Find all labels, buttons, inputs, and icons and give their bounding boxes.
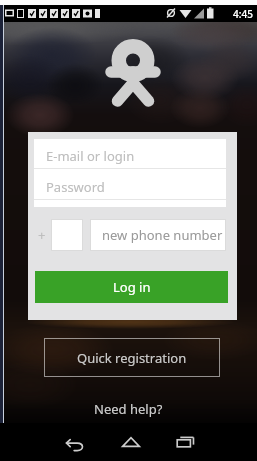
button[interactable] <box>51 219 83 251</box>
button[interactable]: Recents <box>165 423 207 461</box>
staticText: Need help? <box>94 400 163 418</box>
staticText: E-mail or login <box>46 147 135 165</box>
staticText: Password <box>46 178 105 196</box>
button[interactable]: Home <box>110 423 152 461</box>
staticText: 4:45 <box>233 7 253 21</box>
button[interactable]: Quick registration <box>44 338 220 377</box>
button[interactable]: Log in <box>35 271 228 303</box>
button[interactable]: Need help? <box>84 396 173 422</box>
staticText: Log in <box>113 278 151 296</box>
button[interactable]: E-mail or login <box>34 139 226 170</box>
staticText: Quick registration <box>77 349 187 367</box>
staticText: + <box>38 226 46 244</box>
button[interactable]: new phone number <box>90 219 226 251</box>
button[interactable]: Back <box>54 423 96 461</box>
staticText: new phone number <box>102 226 223 244</box>
button[interactable]: Password <box>34 170 226 201</box>
